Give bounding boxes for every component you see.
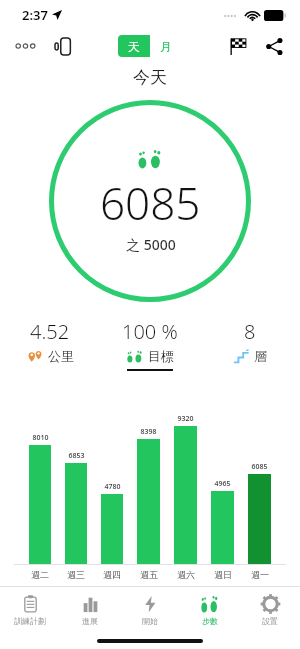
staticText: 週一 — [251, 569, 269, 580]
button[interactable] — [29, 445, 51, 565]
staticText: 設置 — [262, 616, 278, 626]
staticText: 6085 — [251, 462, 268, 472]
staticText: 4.52 — [30, 318, 70, 345]
staticText: 進展 — [82, 616, 98, 626]
staticText: 6853 — [68, 451, 85, 461]
staticText: 層 — [254, 348, 267, 364]
staticText: 開始 — [142, 616, 158, 626]
button[interactable]: Goals — [222, 30, 254, 62]
staticText: 2:37 — [22, 6, 48, 24]
button[interactable]: 天 — [118, 35, 150, 57]
button[interactable]: 進展 — [60, 587, 120, 633]
button[interactable] — [101, 494, 123, 565]
button[interactable]: 4.52 — [0, 318, 100, 371]
button[interactable]: Device — [46, 30, 80, 62]
staticText: 週二 — [31, 569, 49, 580]
staticText: 步數 — [202, 616, 218, 626]
staticText: 4780 — [104, 482, 121, 492]
staticText: 天 — [128, 39, 140, 54]
staticText: 週日 — [214, 569, 232, 580]
button[interactable] — [137, 439, 160, 565]
staticText: 100 % — [122, 318, 178, 345]
button[interactable]: 訓練計劃 — [0, 587, 60, 633]
staticText: 週六 — [177, 569, 195, 580]
button[interactable]: 8 — [200, 318, 300, 371]
staticText: 9320 — [177, 414, 194, 424]
button[interactable] — [248, 474, 271, 565]
staticText: 目標 — [148, 348, 174, 364]
staticText: 今天 — [133, 67, 167, 88]
staticText: 之 5000 — [126, 235, 176, 254]
button[interactable] — [174, 426, 197, 565]
staticText: 8398 — [140, 427, 157, 437]
button[interactable]: More — [8, 30, 42, 62]
button[interactable] — [65, 463, 87, 565]
staticText: 8 — [244, 318, 256, 345]
staticText: 週三 — [67, 569, 85, 580]
staticText: 週四 — [103, 569, 121, 580]
staticText: 月 — [160, 39, 172, 54]
button[interactable]: 100 % — [100, 318, 200, 371]
button[interactable]: 月 — [150, 35, 182, 57]
staticText: 4965 — [214, 479, 231, 489]
staticText: 6085 — [100, 173, 201, 233]
button[interactable]: 步數 — [180, 587, 240, 633]
staticText: 訓練計劃 — [14, 616, 46, 626]
button[interactable]: 設置 — [240, 587, 300, 633]
staticText: 週五 — [140, 569, 158, 580]
button[interactable] — [211, 491, 234, 565]
staticText: 8010 — [32, 433, 49, 443]
staticText: 公里 — [48, 348, 74, 364]
button[interactable]: Share — [258, 30, 290, 62]
button[interactable]: 開始 — [120, 587, 180, 633]
